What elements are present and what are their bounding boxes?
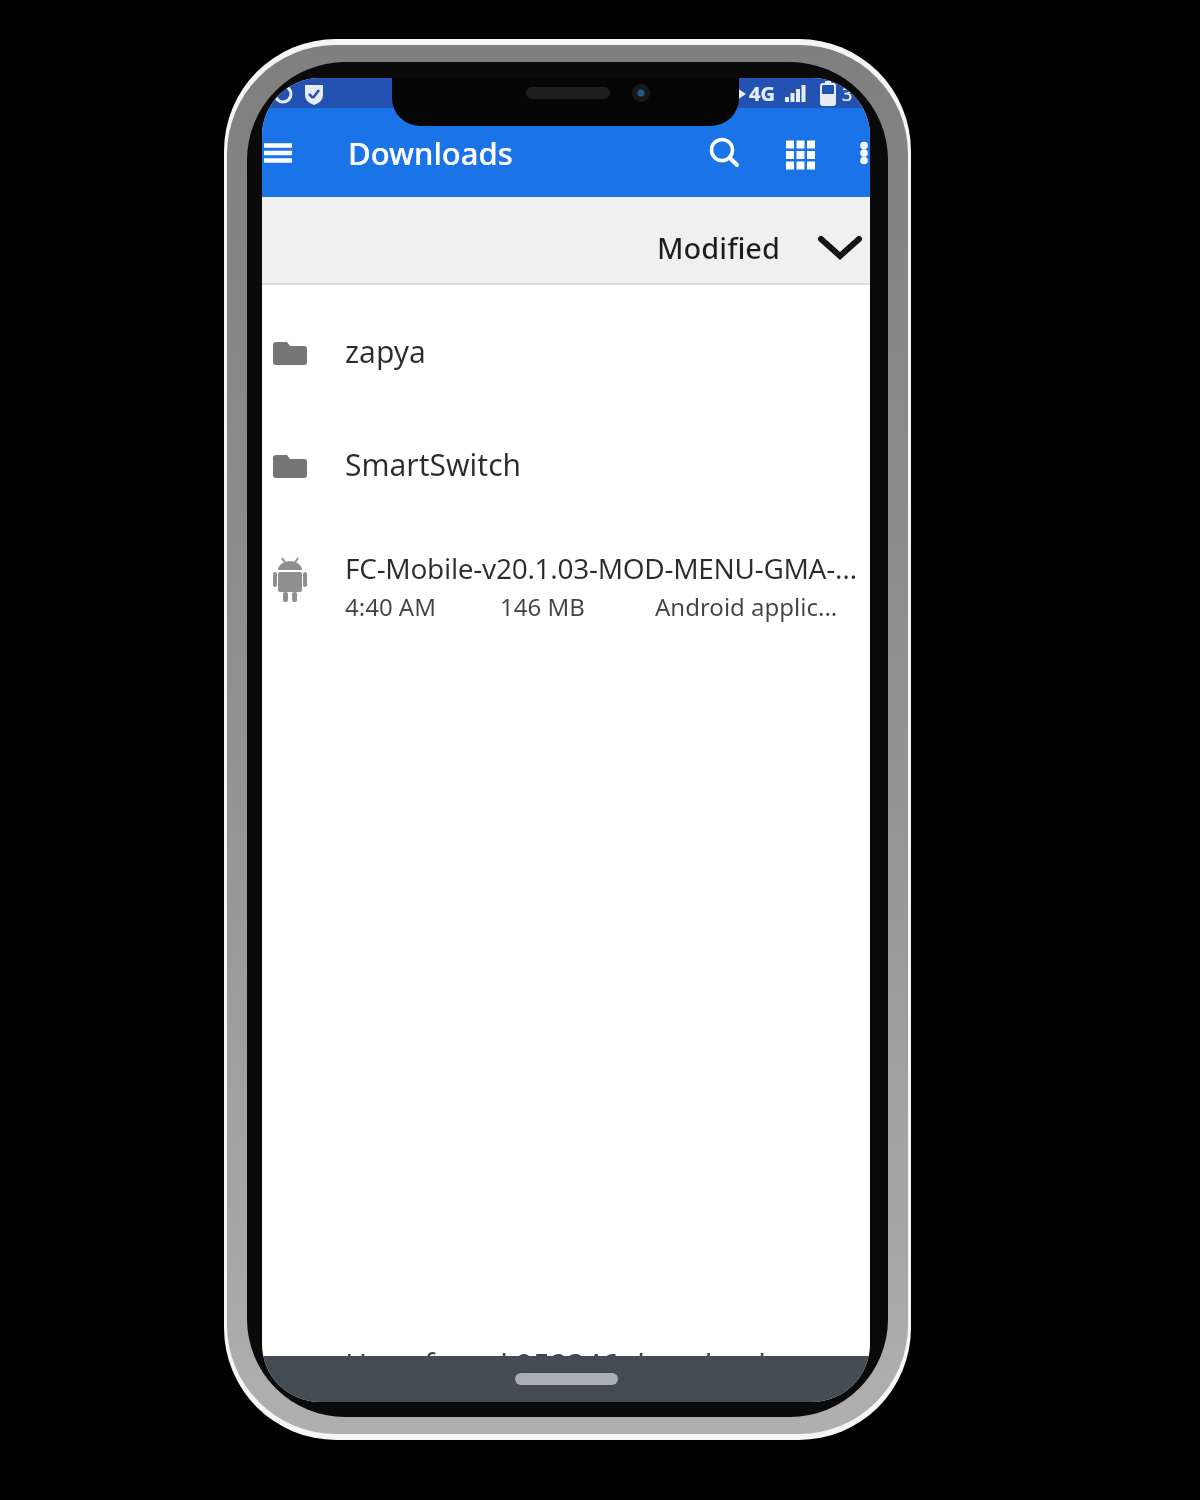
button[interactable]	[262, 131, 302, 175]
staticText: SmartSwitch	[345, 444, 522, 485]
staticText: Android applic...	[655, 590, 838, 623]
button[interactable]	[703, 131, 747, 175]
staticText: Modified	[657, 228, 780, 267]
staticText: zapya	[345, 331, 426, 372]
staticText: 4:40 AM	[345, 590, 436, 623]
button[interactable]: Modified	[262, 197, 870, 285]
button[interactable]: zapya	[262, 300, 870, 402]
staticText: Have found 952346 downloads	[345, 1344, 781, 1385]
button[interactable]	[778, 131, 822, 175]
button[interactable]	[515, 1373, 618, 1385]
staticText: Downloads	[348, 132, 513, 174]
button[interactable]: FC-Mobile-v20.1.03-MOD-MENU-GMA-(Getmods…	[262, 520, 870, 645]
staticText: FC-Mobile-v20.1.03-MOD-MENU-GMA-(Getmods…	[345, 549, 864, 587]
staticText: 3	[842, 82, 853, 107]
staticText: 146 MB	[500, 590, 585, 623]
button[interactable]: SmartSwitch	[262, 413, 870, 515]
staticText: 4G	[749, 80, 775, 107]
button[interactable]	[842, 131, 870, 175]
